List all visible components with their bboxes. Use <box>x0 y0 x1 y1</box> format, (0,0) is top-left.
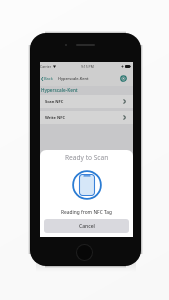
staticText: Back <box>44 76 53 81</box>
button[interactable]: Settings <box>119 74 128 83</box>
button[interactable]: Scan NFC <box>40 95 133 108</box>
staticText: Carrier <box>40 64 52 69</box>
button[interactable]: Write NFC <box>40 111 133 124</box>
staticText: 9:15 PM <box>81 64 94 69</box>
staticText: Scan NFC <box>45 99 64 104</box>
staticText: Hyperscale-Kent <box>58 76 89 81</box>
button[interactable]: Back <box>41 76 58 81</box>
staticText: Reading from NFC Tag <box>61 209 112 216</box>
button[interactable]: Cancel <box>44 219 129 233</box>
staticText: Hyperscale-Kent <box>41 87 78 93</box>
staticText: Ready to Scan <box>65 153 109 162</box>
staticText: Cancel <box>79 223 95 230</box>
staticText: Write NFC <box>45 115 65 120</box>
